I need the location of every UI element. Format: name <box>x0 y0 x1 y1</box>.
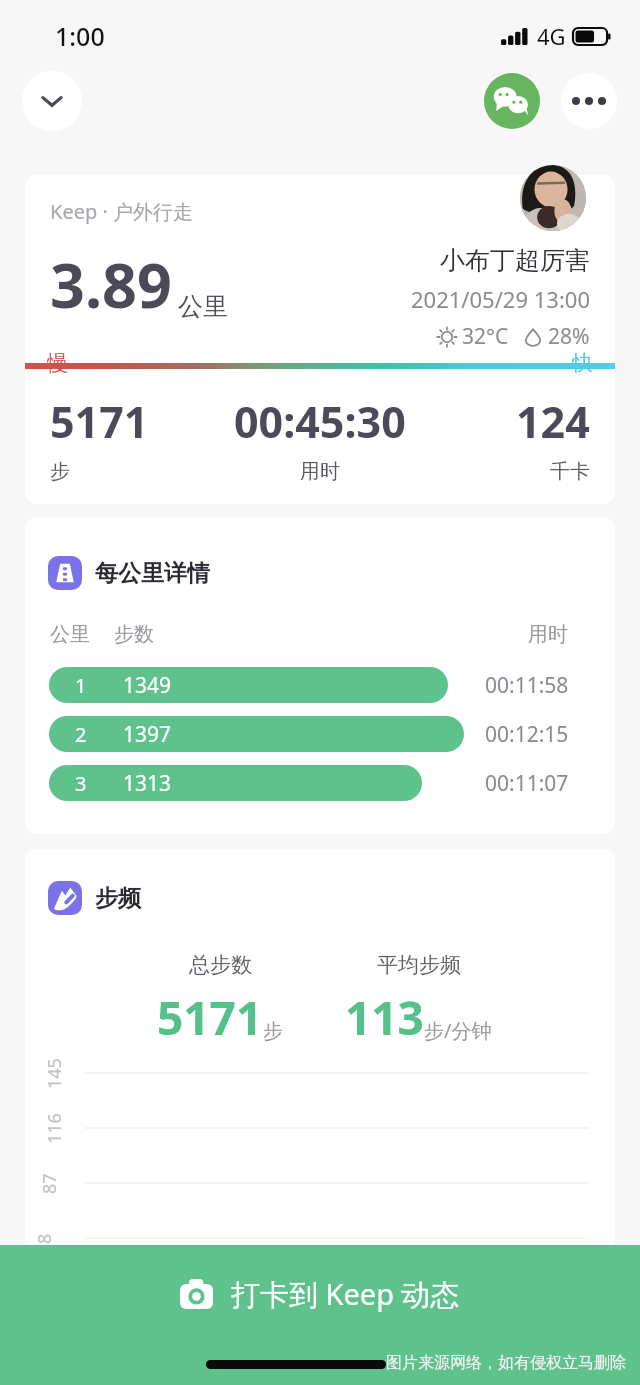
staticText: 2 <box>75 721 87 748</box>
button[interactable]: Profile avatar <box>520 165 586 231</box>
staticText: 快 <box>572 350 593 375</box>
staticText: 用时 <box>300 459 340 484</box>
staticText: 步 <box>263 1019 283 1044</box>
staticText: 4G <box>537 21 566 51</box>
staticText: 步 <box>50 459 70 484</box>
staticText: 00:11:07 <box>485 769 569 798</box>
staticText: 步/分钟 <box>424 1017 492 1044</box>
staticText: 32°C <box>462 322 509 351</box>
staticText: 1 <box>75 672 87 699</box>
staticText: 步数 <box>114 622 154 647</box>
button[interactable]: 1 <box>49 667 448 703</box>
staticText: 总步数 <box>189 952 252 978</box>
staticText: 每公里详情 <box>95 559 210 588</box>
staticText: 116 <box>42 1113 67 1144</box>
staticText: 千卡 <box>550 459 590 484</box>
staticText: 00:45:30 <box>234 392 406 451</box>
staticText: 1349 <box>123 671 172 700</box>
staticText: 87 <box>37 1173 62 1194</box>
button[interactable]: 2 <box>49 716 464 752</box>
staticText: 图片来源网络，如有侵权立马删除 <box>386 1353 626 1373</box>
staticText: 小布丁超厉害 <box>440 245 590 276</box>
staticText: 3.89 <box>50 243 172 326</box>
staticText: 145 <box>42 1058 67 1089</box>
staticText: 5171 <box>157 986 263 1049</box>
staticText: 8 <box>32 1233 57 1244</box>
button[interactable]: Collapse <box>22 71 82 131</box>
staticText: 28% <box>548 322 590 351</box>
staticText: 00:12:15 <box>485 720 569 749</box>
staticText: 1397 <box>123 720 172 749</box>
staticText: 1:00 <box>55 19 105 53</box>
staticText: 113 <box>345 986 424 1049</box>
staticText: 用时 <box>528 622 568 647</box>
staticText: 2021/05/29 13:00 <box>411 284 590 314</box>
staticText: 步频 <box>95 884 141 913</box>
staticText: Keep · 户外行走 <box>50 198 193 225</box>
button[interactable]: 3 <box>49 765 422 801</box>
button[interactable]: WeChat share <box>484 73 540 129</box>
staticText: 1313 <box>123 769 172 798</box>
staticText: 平均步频 <box>377 952 461 978</box>
button[interactable]: 打卡到 Keep 动态 <box>0 1245 640 1343</box>
staticText: 124 <box>516 392 590 451</box>
staticText: 公里 <box>50 622 90 647</box>
staticText: 3 <box>75 770 87 797</box>
staticText: 打卡到 Keep 动态 <box>231 1274 460 1314</box>
staticText: 公里 <box>178 291 228 322</box>
staticText: 5171 <box>50 392 149 451</box>
staticText: 00:11:58 <box>485 671 569 700</box>
staticText: 慢 <box>47 350 68 375</box>
button[interactable]: More options <box>561 73 617 129</box>
